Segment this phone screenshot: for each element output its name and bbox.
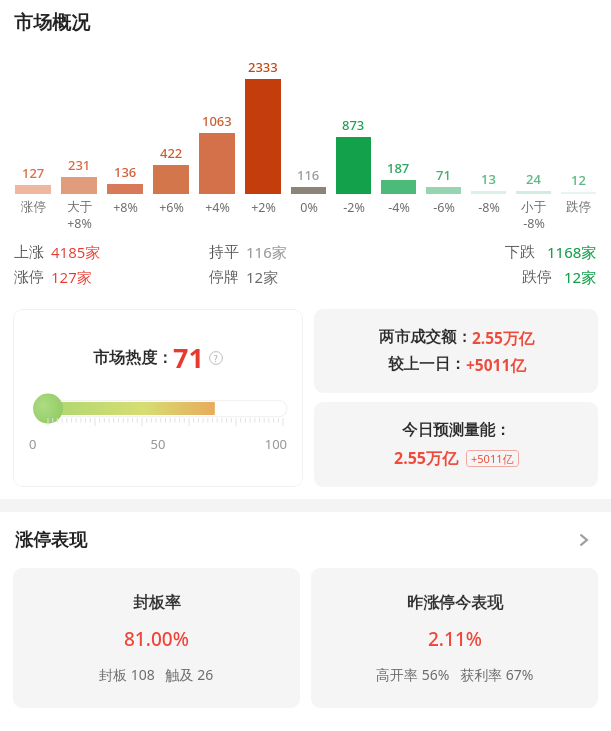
staticText: 81.00% <box>124 626 189 652</box>
button[interactable]: 封板率 <box>13 568 300 708</box>
button[interactable]: 涨停表现 <box>0 512 611 568</box>
staticText: 2.55万亿 <box>472 327 534 348</box>
staticText: 今日预测量能： <box>402 420 511 440</box>
other: Help <box>209 351 223 365</box>
staticText: 高开率 56% 获利率 67% <box>376 665 534 684</box>
staticText: 0% <box>300 199 318 216</box>
staticText: 下跌 <box>505 243 535 262</box>
staticText: 12 <box>571 171 586 189</box>
staticText: +5011亿 <box>466 354 526 375</box>
staticText: -6% <box>433 199 455 216</box>
staticText: 116家 <box>246 242 287 262</box>
other: More limit-up details <box>572 528 596 552</box>
staticText: 422 <box>160 144 183 162</box>
staticText: 小于 <box>521 199 546 215</box>
staticText: 跌停 <box>566 199 591 215</box>
staticText: 封板率 <box>133 593 181 613</box>
button[interactable]: 两市成交额： <box>314 309 598 393</box>
staticText: 上涨 <box>14 243 44 262</box>
staticText: 127 <box>22 164 45 182</box>
staticText: 昨涨停今表现 <box>407 593 503 613</box>
staticText: 71 <box>436 166 451 184</box>
staticText: 市场热度： <box>93 348 173 368</box>
staticText: 187 <box>387 159 410 177</box>
staticText: 市场概况 <box>14 11 90 35</box>
button[interactable]: 今日预测量能： <box>314 402 598 487</box>
staticText: -8% <box>478 199 500 216</box>
staticText: 71 <box>173 339 204 376</box>
staticText: 大于 <box>67 199 92 215</box>
staticText: 涨停 <box>14 268 44 287</box>
button[interactable]: 昨涨停今表现 <box>311 568 598 708</box>
staticText: 12家 <box>564 267 597 287</box>
staticText: 涨停 <box>21 199 46 215</box>
staticText: 50 <box>115 435 201 453</box>
button[interactable]: 市场热度： <box>13 309 303 487</box>
staticText: 24 <box>526 170 541 188</box>
staticText: 封板 108 触及 26 <box>99 665 214 684</box>
staticText: +2% <box>251 199 276 216</box>
staticText: +6% <box>159 199 184 216</box>
staticText: 12家 <box>246 267 279 287</box>
staticText: 4185家 <box>51 242 101 262</box>
staticText: +8% <box>113 199 138 216</box>
staticText: -4% <box>388 199 410 216</box>
staticText: 两市成交额： <box>379 327 472 347</box>
staticText: 2.11% <box>428 626 482 652</box>
staticText: +5011亿 <box>471 451 514 466</box>
staticText: 跌停 <box>522 268 552 287</box>
staticText: -8% <box>523 215 545 232</box>
staticText: 136 <box>114 163 137 181</box>
staticText: 2333 <box>248 58 278 76</box>
staticText: ? <box>214 353 218 364</box>
staticText: 1063 <box>202 112 232 130</box>
staticText: 127家 <box>51 267 92 287</box>
staticText: 涨停表现 <box>15 529 87 552</box>
staticText: 较上一日： <box>388 354 466 374</box>
staticText: 231 <box>68 156 91 174</box>
staticText: 873 <box>342 116 365 134</box>
staticText: 0 <box>29 435 115 453</box>
staticText: +8% <box>67 215 92 232</box>
staticText: 停牌 <box>209 268 239 287</box>
staticText: -2% <box>343 199 365 216</box>
staticText: 13 <box>481 170 496 188</box>
staticText: 1168家 <box>547 242 597 262</box>
staticText: +4% <box>205 199 230 216</box>
staticText: 持平 <box>209 243 239 262</box>
staticText: 2.55万亿 <box>394 447 458 469</box>
staticText: 116 <box>297 166 320 184</box>
staticText: 100 <box>201 435 287 453</box>
